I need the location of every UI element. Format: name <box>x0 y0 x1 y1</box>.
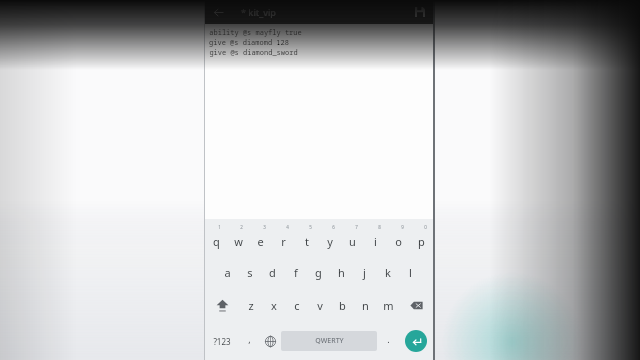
button[interactable]: 4 <box>272 221 295 256</box>
button[interactable]: 5 <box>295 221 318 256</box>
staticText: 2 <box>240 224 243 230</box>
button[interactable]: k <box>376 256 399 289</box>
button[interactable]: , <box>239 322 259 360</box>
staticText: give @s diamond_sword <box>209 48 298 58</box>
staticText: p <box>418 234 425 249</box>
staticText: 3 <box>263 224 266 230</box>
button[interactable]: 7 <box>341 221 364 256</box>
button[interactable]: c <box>285 289 308 322</box>
staticText: f <box>294 265 298 280</box>
staticText: 6 <box>332 224 335 230</box>
staticText: , <box>248 333 251 345</box>
staticText: 7 <box>355 224 358 230</box>
staticText: * kit_vip <box>241 6 276 18</box>
staticText: e <box>257 234 264 249</box>
staticText: ?123 <box>213 336 231 347</box>
staticText: t <box>305 234 309 249</box>
button[interactable]: ?123 <box>205 322 239 360</box>
staticText: i <box>374 234 377 249</box>
staticText: 4 <box>286 224 289 230</box>
button[interactable]: 2 <box>227 221 249 256</box>
staticText: give @s diamomd 128 <box>209 38 289 48</box>
button[interactable]: QWERTY <box>281 331 377 351</box>
staticText: a <box>224 265 231 280</box>
staticText: 8 <box>378 224 381 230</box>
button[interactable]: d <box>261 256 284 289</box>
staticText: j <box>363 265 366 280</box>
staticText: v <box>317 298 323 313</box>
button[interactable]: ability @s mayfly true <box>205 24 433 219</box>
staticText: m <box>383 298 394 313</box>
button[interactable]: Shift <box>205 289 239 322</box>
button[interactable]: j <box>353 256 376 289</box>
staticText: h <box>338 265 345 280</box>
button[interactable]: 6 <box>318 221 341 256</box>
staticText: l <box>409 265 412 280</box>
staticText: s <box>247 265 253 280</box>
button[interactable]: Save <box>407 0 433 24</box>
button[interactable]: z <box>239 289 262 322</box>
staticText: 5 <box>309 224 312 230</box>
button[interactable]: f <box>284 256 307 289</box>
button[interactable]: Back <box>205 0 231 24</box>
button[interactable]: 1 <box>205 221 227 256</box>
button[interactable]: a <box>216 256 238 289</box>
staticText: . <box>387 333 390 345</box>
button[interactable]: m <box>377 289 400 322</box>
staticText: y <box>327 234 333 249</box>
button[interactable]: 0 <box>410 221 433 256</box>
staticText: k <box>385 265 391 280</box>
button[interactable]: h <box>330 256 353 289</box>
staticText: n <box>362 298 369 313</box>
staticText: 9 <box>401 224 404 230</box>
staticText: c <box>294 298 300 313</box>
staticText: x <box>271 298 277 313</box>
staticText: r <box>281 234 286 249</box>
button[interactable]: v <box>308 289 331 322</box>
button[interactable]: Backspace <box>400 289 433 322</box>
button[interactable]: 9 <box>387 221 410 256</box>
staticText: 0 <box>424 224 427 230</box>
button[interactable]: 8 <box>364 221 387 256</box>
button[interactable]: Enter <box>405 330 427 352</box>
staticText: u <box>349 234 356 249</box>
button[interactable]: n <box>354 289 377 322</box>
staticText: QWERTY <box>315 336 344 346</box>
button[interactable]: x <box>262 289 285 322</box>
staticText: b <box>339 298 346 313</box>
staticText: d <box>269 265 276 280</box>
staticText: z <box>248 298 254 313</box>
button[interactable]: l <box>399 256 422 289</box>
staticText: w <box>234 234 243 249</box>
staticText: 1 <box>218 224 221 230</box>
button[interactable]: s <box>238 256 261 289</box>
button[interactable]: Change language <box>259 322 281 360</box>
staticText: g <box>315 265 322 280</box>
staticText: ability @s mayfly true <box>209 28 302 38</box>
staticText: o <box>395 234 402 249</box>
button[interactable]: . <box>377 322 399 360</box>
button[interactable]: g <box>307 256 330 289</box>
button[interactable]: b <box>331 289 354 322</box>
staticText: q <box>213 234 220 249</box>
button[interactable]: 3 <box>249 221 272 256</box>
